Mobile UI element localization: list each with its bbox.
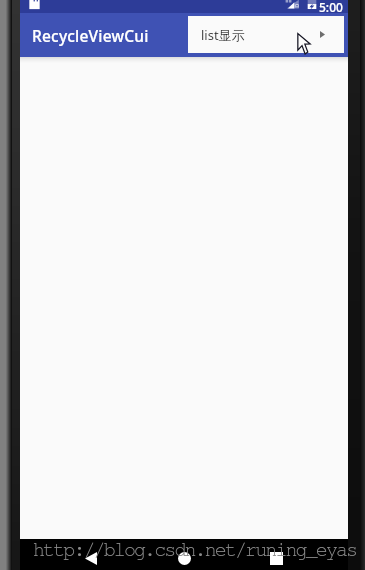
staticText: http://blog.csdn.net/runing_eyas <box>33 540 357 560</box>
staticText: 5:00 <box>319 0 343 12</box>
button[interactable]: Recent apps <box>256 539 296 570</box>
staticText: RecycleViewCui <box>32 25 149 46</box>
button[interactable]: Home <box>164 539 204 570</box>
button[interactable]: Back <box>71 539 111 570</box>
button[interactable]: list显示 <box>188 16 344 53</box>
staticText: list显示 <box>201 26 245 44</box>
